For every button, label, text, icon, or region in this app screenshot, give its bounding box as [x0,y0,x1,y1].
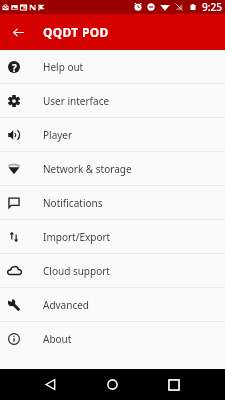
button[interactable]: About [0,322,225,355]
staticText: 9:25 [202,0,222,14]
button[interactable]: Home [81,369,143,400]
staticText: QQDT POD [43,24,109,40]
staticText: ? [12,61,17,73]
staticText: Notifications [43,196,103,210]
button[interactable]: Import/Export [0,220,225,253]
button[interactable]: Player [0,118,225,151]
staticText: Help out [43,60,84,74]
button[interactable]: Network & storage [0,152,225,185]
button[interactable]: Notifications [0,186,225,219]
button[interactable]: Back [0,14,37,50]
staticText: Import/Export [43,230,111,244]
button[interactable]: Advanced [0,288,225,321]
button[interactable]: Back [19,369,81,400]
staticText: Cloud support [43,264,110,278]
staticText: User interface [43,94,110,108]
button[interactable]: Cloud support [0,254,225,287]
staticText: About [43,332,72,346]
staticText: Network & storage [43,162,132,176]
button[interactable]: User interface [0,84,225,117]
button[interactable]: ? [0,50,225,83]
button[interactable]: Recents [143,369,205,400]
staticText: Player [43,128,73,142]
staticText: Advanced [43,298,89,312]
